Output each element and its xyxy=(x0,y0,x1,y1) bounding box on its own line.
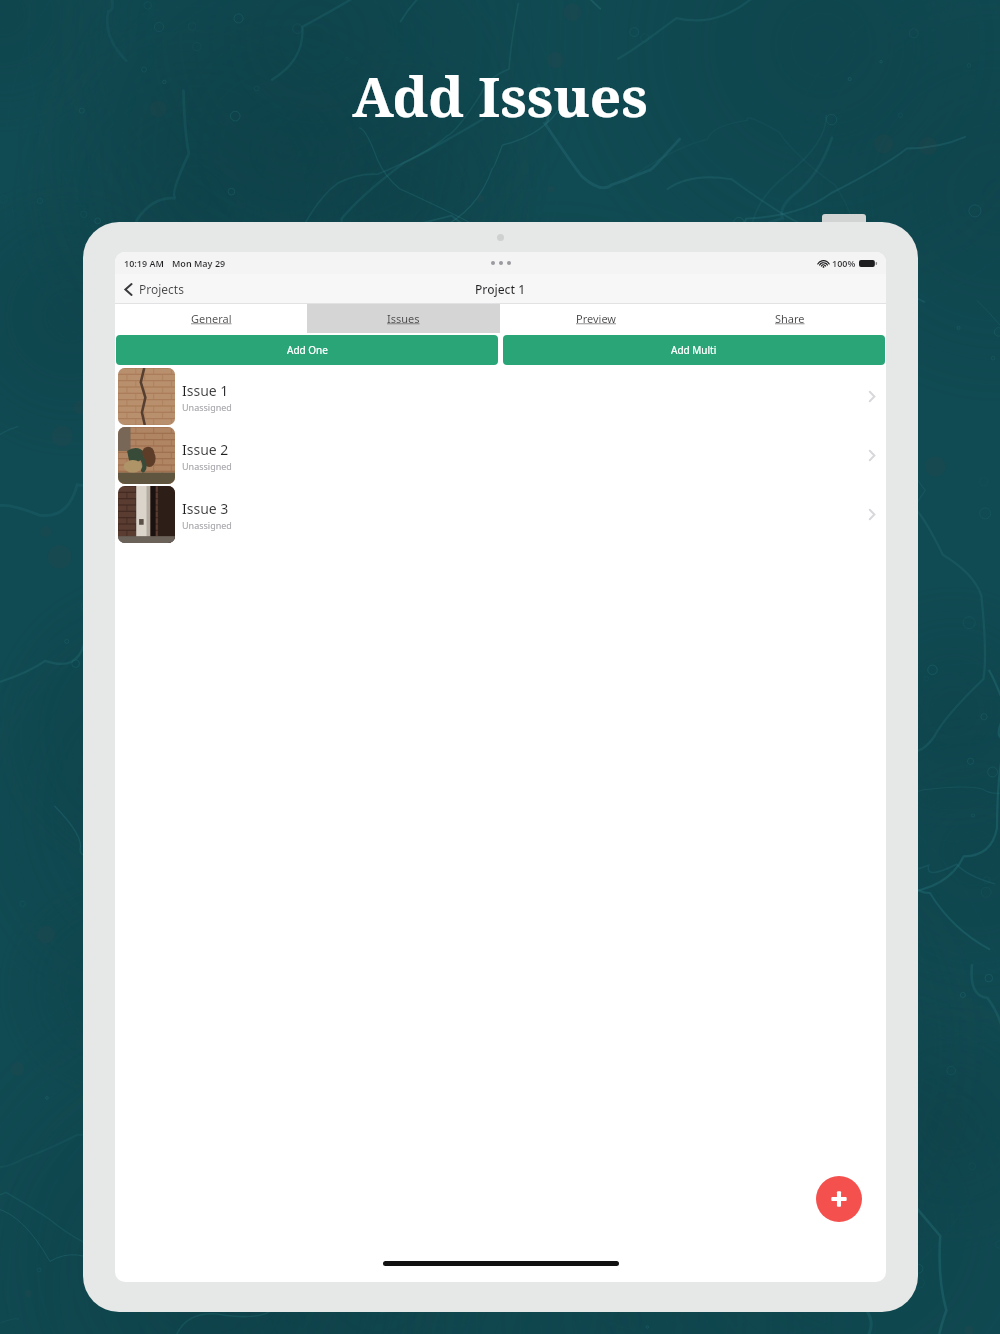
button[interactable]: Preview xyxy=(500,304,693,333)
staticText: Add Multi xyxy=(671,343,717,357)
staticText: Unassigned xyxy=(182,519,232,531)
staticText: Unassigned xyxy=(182,401,232,413)
staticText: 10:19 AM xyxy=(124,257,164,269)
staticText: Issue 2 xyxy=(182,440,229,459)
staticText: Project 1 xyxy=(475,281,526,297)
button[interactable]: General xyxy=(115,304,307,333)
button[interactable]: Issue 2 xyxy=(115,426,886,485)
staticText: Preview xyxy=(576,311,617,326)
button[interactable]: Add One xyxy=(116,335,498,365)
button[interactable]: Issues xyxy=(307,304,500,333)
button[interactable]: Projects xyxy=(123,281,184,297)
staticText: 100% xyxy=(832,257,856,269)
staticText: Add One xyxy=(287,343,328,357)
staticText: Issue 3 xyxy=(182,499,229,518)
staticText: Issue 1 xyxy=(182,381,229,400)
button[interactable]: Add issue xyxy=(816,1176,862,1222)
button[interactable]: Issue 1 xyxy=(115,367,886,426)
button[interactable]: Add Multi xyxy=(503,335,885,365)
button[interactable]: Share xyxy=(693,304,886,333)
staticText: General xyxy=(191,311,232,326)
staticText: Add Issues xyxy=(352,58,648,133)
staticText: Mon May 29 xyxy=(172,257,226,269)
staticText: Unassigned xyxy=(182,460,232,472)
staticText: Issues xyxy=(387,311,420,326)
staticText: Projects xyxy=(139,281,184,297)
staticText: Share xyxy=(775,311,805,326)
button[interactable]: Issue 3 xyxy=(115,485,886,544)
